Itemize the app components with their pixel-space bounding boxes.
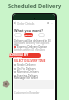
staticText: Tomorrow [24,33,33,37]
staticText: SCHEDULE MY DELIVERY [9,53,41,58]
button[interactable]: More options [51,22,53,24]
button[interactable]: Share [47,22,49,24]
button[interactable]: Evening Delivery [14,74,55,77]
staticText: Order Details [17,22,35,26]
staticText: Standard delivery fee applies [14,41,50,45]
staticText: Evening Delivery [17,74,38,77]
button[interactable]: Later [38,33,45,37]
staticText: SELECT DELIVERY TIME [14,59,46,63]
button[interactable]: Express Delivery Option [14,45,48,49]
staticText: What you want? [14,28,43,33]
staticText: Express Delivery Option [17,45,48,49]
staticText: Delivery will be delivered in 30 min [14,39,55,47]
button[interactable]: On Fix Delivery [14,67,55,70]
staticText: Message for seller [14,76,39,80]
button[interactable]: SCHEDULE MY DELIVERY [9,53,41,58]
button[interactable]: Tomorrow [24,33,33,37]
staticText: Arrives within 45 minutes [14,48,45,52]
button[interactable]: Morning Delivery [14,70,55,73]
staticText: Today [15,34,22,37]
staticText: Single Delivery [17,63,36,66]
button[interactable]: Back [14,22,16,24]
button[interactable]: Today [14,33,22,37]
staticText: Customer in Reorder [14,91,40,95]
staticText: On Fix Delivery [17,67,36,70]
button[interactable]: Single Delivery [14,63,55,66]
staticText: Later [39,34,45,37]
staticText: Morning Delivery [17,70,39,73]
staticText: Scheduled Delivery [8,2,62,10]
